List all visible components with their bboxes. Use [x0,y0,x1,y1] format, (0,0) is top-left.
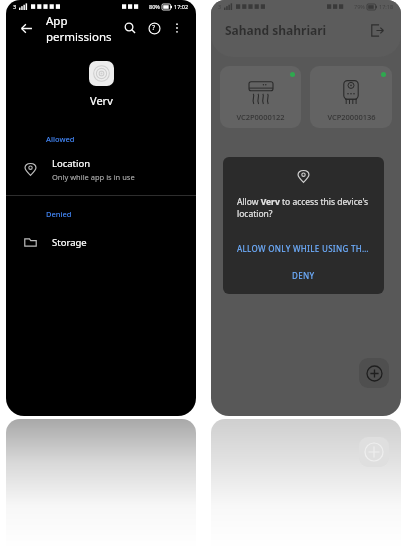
button[interactable]: Search [118,16,142,40]
staticText: Denied [46,209,72,219]
button[interactable]: Log out [367,20,387,40]
staticText: Verv [90,93,113,108]
staticText: Allowed [46,134,75,144]
button[interactable]: VCP20000136 [310,66,392,128]
button[interactable]: Storage [6,228,196,256]
staticText: VC2P0000122 [236,112,285,122]
staticText: DENY [292,270,315,281]
button[interactable]: More options [166,17,188,39]
button[interactable]: Location [6,152,196,186]
button[interactable]: Add device [359,358,389,388]
staticText: Location [52,157,91,170]
staticText: App permissions [46,13,118,43]
staticText: 3 [13,3,17,10]
staticText: ALLOW ONLY WHILE USING TH… [237,243,369,254]
staticText: 79% [354,3,365,10]
staticText: Only while app is in use [52,172,135,182]
staticText: Storage [52,236,87,249]
button[interactable]: DENY [237,264,370,286]
staticText: 80% [149,3,160,10]
button[interactable]: ALLOW ONLY WHILE USING TH… [237,237,370,259]
staticText: 3 [218,3,222,10]
staticText: ? [152,23,156,33]
staticText: 17:18 [379,3,394,10]
button[interactable]: Help [142,16,166,40]
staticText: Sahand shahriari [225,22,367,38]
staticText: Allow Verv to access this device's locat… [237,196,370,220]
staticText: 17:02 [174,3,189,10]
staticText: VCP20000136 [327,112,376,122]
button[interactable]: VC2P0000122 [220,66,301,128]
button[interactable]: Back [14,16,38,40]
